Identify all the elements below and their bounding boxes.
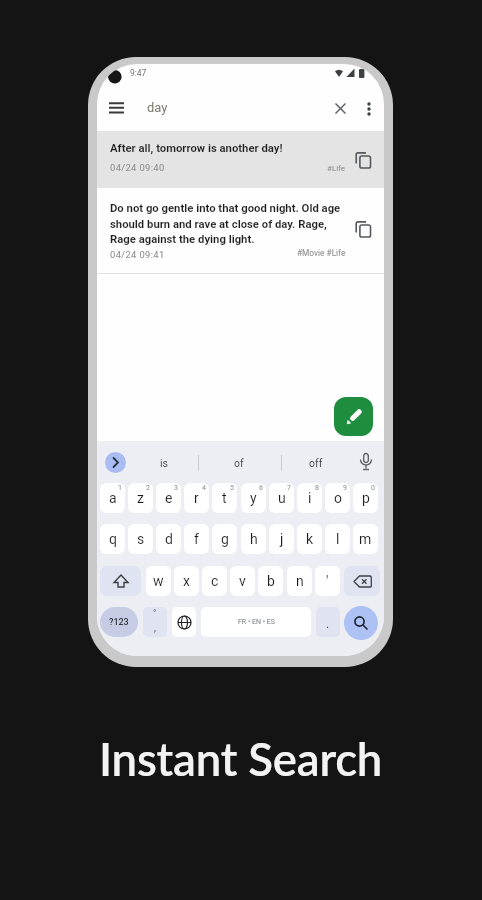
staticText: l	[336, 531, 340, 547]
staticText: Instant Search	[99, 731, 383, 786]
staticText: #Movie #Life	[297, 248, 346, 258]
staticText: 7	[287, 484, 291, 492]
staticText: of	[234, 457, 244, 469]
staticText: Do not go gentle into that good night. O…	[110, 202, 341, 246]
button[interactable]: m	[353, 524, 378, 554]
button[interactable]: .	[316, 607, 340, 637]
staticText: 04/24 09:41	[110, 249, 165, 260]
staticText: ,	[154, 622, 156, 634]
staticText: .	[326, 617, 330, 631]
button[interactable]: b	[258, 566, 283, 596]
button[interactable]	[366, 102, 372, 116]
button[interactable]: p	[353, 483, 378, 513]
staticText: s	[137, 531, 145, 547]
staticText: r	[194, 490, 199, 506]
staticText: 04/24 09:40	[110, 162, 165, 173]
staticText: o	[334, 490, 342, 506]
staticText: day	[147, 100, 168, 115]
staticText: 9:47	[130, 68, 147, 78]
button[interactable]	[355, 221, 372, 238]
staticText: 8	[315, 484, 319, 492]
button[interactable]	[344, 606, 378, 640]
button[interactable]	[109, 102, 125, 114]
staticText: p	[362, 490, 370, 506]
staticText: 4	[202, 484, 206, 492]
button[interactable]: k	[297, 524, 322, 554]
staticText: g	[221, 531, 229, 547]
button[interactable]: i	[297, 483, 322, 513]
staticText: d	[165, 531, 173, 547]
staticText: c	[211, 573, 219, 589]
staticText: ?123	[109, 617, 129, 628]
button[interactable]	[172, 607, 196, 637]
staticText: 1	[118, 484, 122, 492]
button[interactable]: j	[269, 524, 294, 554]
staticText: v	[239, 573, 246, 589]
staticText: k	[306, 531, 314, 547]
staticText: is	[160, 457, 168, 469]
button[interactable]: g	[212, 524, 237, 554]
staticText: 3	[174, 484, 178, 492]
staticText: 2	[146, 484, 150, 492]
button[interactable]: FR • EN • ES	[201, 607, 311, 637]
button[interactable]: is	[134, 452, 194, 473]
button[interactable]: x	[174, 566, 199, 596]
button[interactable]: o	[325, 483, 350, 513]
staticText: '	[326, 573, 329, 589]
button[interactable]: w	[146, 566, 171, 596]
button[interactable]: d	[156, 524, 181, 554]
staticText: j	[280, 531, 284, 547]
staticText: u	[278, 490, 286, 506]
staticText: °	[153, 608, 157, 619]
staticText: z	[137, 490, 144, 506]
button[interactable]: After all, tomorrow is another day!	[97, 131, 384, 188]
button[interactable]: r	[184, 483, 209, 513]
staticText: 6	[259, 484, 263, 492]
button[interactable]	[334, 397, 373, 436]
staticText: 5	[230, 484, 234, 492]
button[interactable]	[359, 453, 373, 472]
button[interactable]: l	[325, 524, 350, 554]
staticText: a	[109, 490, 117, 506]
button[interactable]: y	[241, 483, 266, 513]
button[interactable]: n	[287, 566, 312, 596]
button[interactable]: v	[230, 566, 255, 596]
button[interactable]: '	[315, 566, 340, 596]
staticText: f	[194, 531, 199, 547]
staticText: off	[309, 457, 323, 469]
button[interactable]: c	[202, 566, 227, 596]
button[interactable]	[100, 566, 141, 596]
button[interactable]	[335, 103, 346, 114]
button[interactable]: off	[286, 452, 346, 473]
button[interactable]: t	[212, 483, 237, 513]
staticText: FR • EN • ES	[238, 618, 275, 626]
staticText: n	[296, 573, 304, 589]
button[interactable]: s	[128, 524, 153, 554]
button[interactable]	[355, 152, 372, 169]
staticText: i	[308, 490, 312, 506]
staticText: m	[359, 531, 372, 547]
button[interactable]	[105, 452, 126, 473]
staticText: t	[222, 490, 227, 506]
staticText: e	[165, 490, 173, 506]
staticText: y	[250, 490, 257, 506]
button[interactable]	[344, 566, 380, 596]
staticText: #Life	[327, 164, 346, 173]
button[interactable]: ?123	[100, 607, 138, 637]
staticText: 9	[343, 484, 347, 492]
button[interactable]: of	[209, 452, 269, 473]
button[interactable]: e	[156, 483, 181, 513]
staticText: x	[183, 573, 190, 589]
button[interactable]: a	[100, 483, 125, 513]
button[interactable]: q	[100, 524, 125, 554]
button[interactable]: z	[128, 483, 153, 513]
button[interactable]: Do not go gentle into that good night. O…	[97, 189, 384, 273]
button[interactable]: u	[269, 483, 294, 513]
staticText: b	[267, 573, 275, 589]
staticText: After all, tomorrow is another day!	[110, 142, 283, 155]
staticText: 0	[371, 484, 375, 492]
staticText: w	[153, 573, 164, 589]
button[interactable]: f	[184, 524, 209, 554]
button[interactable]: h	[241, 524, 266, 554]
button[interactable]: °	[143, 607, 167, 637]
